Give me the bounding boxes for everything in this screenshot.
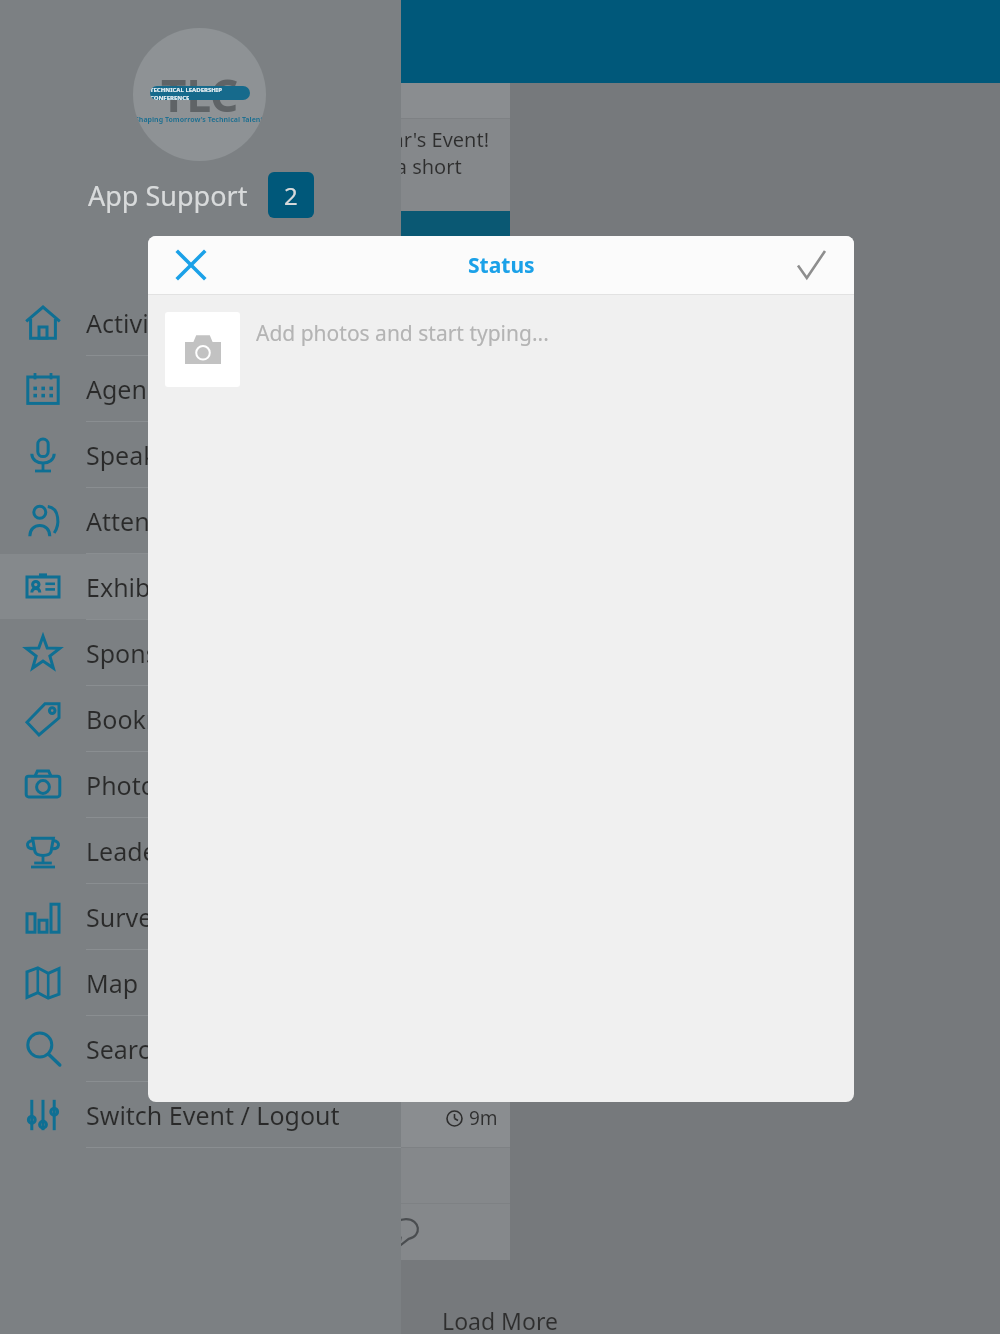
button[interactable]: Comment: [301, 1204, 510, 1260]
button[interactable]: Switch Event / Logout: [0, 1082, 401, 1147]
button[interactable]: TLC: [92, 1088, 510, 1260]
button[interactable]: Speakers: [0, 422, 401, 487]
staticText: Map: [86, 966, 139, 1000]
button[interactable]: Photos: [0, 752, 401, 817]
staticText: Activity: [86, 306, 171, 340]
staticText: 9m: [469, 1105, 498, 1131]
staticText: Leaderboard: [86, 834, 237, 868]
staticText: Photos: [86, 768, 168, 802]
button[interactable]: TLC: [92, 691, 510, 863]
staticText: TLC: [113, 1108, 140, 1128]
button[interactable]: Activity: [0, 290, 401, 355]
button[interactable]: Bookmarks: [0, 686, 401, 751]
staticText: Bookmarks: [86, 702, 219, 736]
staticText: TLC: [113, 711, 140, 731]
button[interactable]: Attendees: [0, 488, 401, 553]
staticText: Speakers: [86, 438, 193, 472]
button[interactable]: TLC: [92, 496, 510, 668]
staticText: 9m: [469, 319, 498, 345]
staticText: App Support: [88, 177, 248, 214]
button[interactable]: Promoted Post: [92, 83, 510, 266]
button[interactable]: Like: [92, 612, 300, 668]
staticText: Status: [468, 251, 535, 280]
staticText: TLC: [113, 905, 140, 925]
button[interactable]: Post: [782, 236, 840, 294]
staticText: Agenda: [86, 372, 177, 406]
button[interactable]: Like: [92, 418, 300, 474]
staticText: Search: [86, 1032, 166, 1066]
button[interactable]: Add photos and start typing...: [256, 319, 549, 348]
button[interactable]: Agenda: [0, 356, 401, 421]
staticText: 2: [284, 179, 298, 212]
staticText: TLC: [113, 516, 140, 536]
staticText: Welcome to the app for this year's Event…: [106, 126, 500, 207]
button[interactable]: TLC: [133, 28, 266, 161]
button[interactable]: Exhibitors: [0, 554, 401, 619]
button[interactable]: TLC: [92, 885, 510, 1057]
button[interactable]: Sponsors: [0, 620, 401, 685]
staticText: TLC: [161, 65, 239, 125]
staticText: Attendees: [86, 504, 206, 538]
button[interactable]: Search: [0, 1016, 401, 1081]
button[interactable]: Like: [92, 807, 300, 863]
button[interactable]: Map: [0, 950, 401, 1015]
staticText: TECHNICAL LEADERSHIP CONFERENCE: [150, 86, 250, 100]
staticText: Sponsors: [86, 636, 196, 670]
staticText: App Support: [160, 1103, 290, 1133]
staticText: App Support: [160, 317, 290, 347]
staticText: Surveys: [86, 900, 177, 934]
button[interactable]: Load More: [0, 1305, 1000, 1334]
staticText: Promoted Post: [106, 89, 225, 112]
button[interactable]: 2: [268, 172, 314, 218]
button[interactable]: Surveys: [0, 884, 401, 949]
staticText: Shaping Tomorrow's Technical Talent: [135, 115, 264, 125]
staticText: TLC: [113, 322, 140, 342]
button[interactable]: Leaderboard: [0, 818, 401, 883]
button[interactable]: Close: [162, 236, 220, 294]
button[interactable]: Add photo: [165, 312, 240, 387]
staticText: Switch Event / Logout: [86, 1098, 340, 1132]
button[interactable]: Like: [92, 1001, 300, 1057]
button[interactable]: TLC: [92, 302, 510, 474]
staticText: Exhibitors: [86, 570, 204, 604]
